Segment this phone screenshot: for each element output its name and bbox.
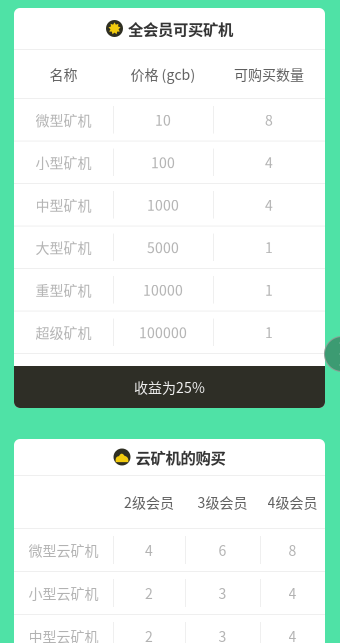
staticText: 10000 xyxy=(143,280,183,300)
staticText: 4级会员 xyxy=(267,492,317,512)
staticText: 4 xyxy=(265,152,273,172)
staticText: 可购买数量 xyxy=(234,64,304,84)
staticText: 6 xyxy=(218,540,226,560)
staticText: 100000 xyxy=(139,322,187,342)
staticText: 4 xyxy=(145,540,153,560)
staticText: 3 xyxy=(218,626,226,643)
staticText: 全会员可买矿机 xyxy=(128,17,233,40)
staticText: 2级会员 xyxy=(124,492,174,512)
staticText: 收益为25% xyxy=(134,377,205,397)
staticText: 名称 xyxy=(49,64,77,84)
staticText: 超级矿机 xyxy=(35,322,91,342)
staticText: 1 xyxy=(265,280,273,300)
staticText: 10 xyxy=(155,110,171,130)
staticText: 8 xyxy=(288,540,296,560)
staticText: 3级会员 xyxy=(197,492,247,512)
staticText: 中型矿机 xyxy=(35,195,91,215)
staticText: 中型云矿机 xyxy=(28,626,98,643)
staticText: 重型矿机 xyxy=(35,280,91,300)
staticText: 4 xyxy=(288,626,296,643)
staticText: 云矿机的购买 xyxy=(135,446,225,468)
staticText: 2 xyxy=(145,626,153,643)
staticText: 1 xyxy=(265,237,273,257)
staticText: 小型矿机 xyxy=(35,152,91,172)
button[interactable]: More xyxy=(324,336,340,372)
staticText: 100 xyxy=(151,152,175,172)
staticText: 4 xyxy=(288,583,296,603)
staticText: 1 xyxy=(265,322,273,342)
staticText: 微型云矿机 xyxy=(28,540,98,560)
staticText: 5000 xyxy=(147,237,179,257)
staticText: 1000 xyxy=(147,195,179,215)
staticText: 小型云矿机 xyxy=(28,583,98,603)
staticText: 微型矿机 xyxy=(35,110,91,130)
staticText: 价格 (gcb) xyxy=(130,64,195,84)
staticText: 8 xyxy=(265,110,273,130)
staticText: 4 xyxy=(265,195,273,215)
staticText: 大型矿机 xyxy=(35,237,91,257)
staticText: 2 xyxy=(145,583,153,603)
staticText: 3 xyxy=(218,583,226,603)
